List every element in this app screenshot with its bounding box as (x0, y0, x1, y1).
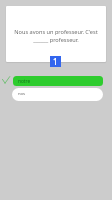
button[interactable]: notre (13, 76, 103, 86)
button[interactable]: Question 1 (50, 56, 61, 67)
button[interactable]: nos (12, 88, 103, 101)
staticText: notre (18, 78, 31, 85)
staticText: 1 (53, 56, 58, 67)
staticText: nos (18, 91, 26, 97)
staticText: Nous avons un professeur. C'est ______ p… (13, 28, 99, 44)
other: Correct (2, 76, 10, 84)
